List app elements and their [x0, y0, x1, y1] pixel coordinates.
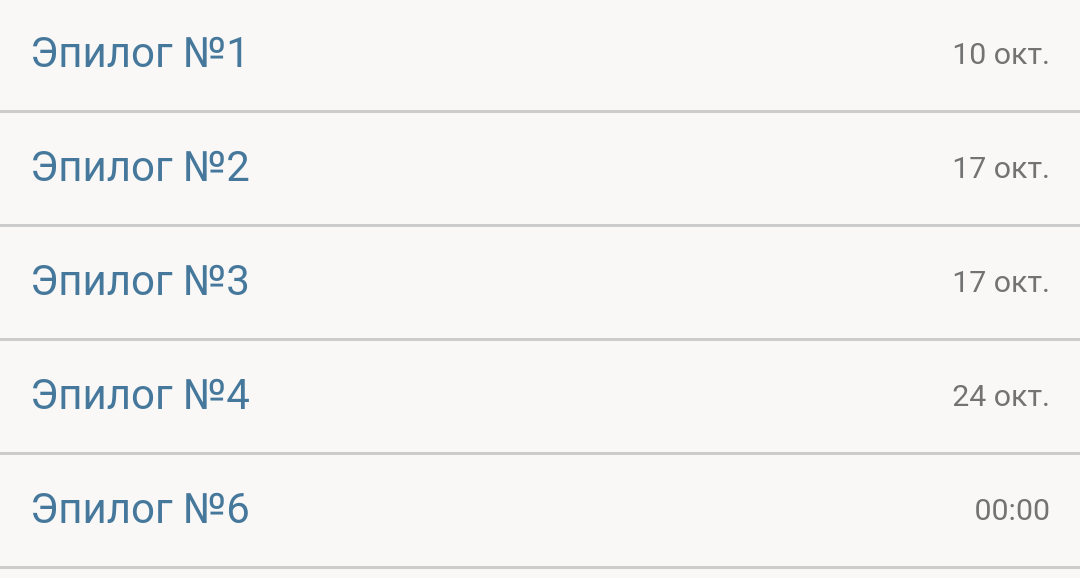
staticText: 00:00: [974, 492, 1050, 528]
staticText: Эпилог №3: [30, 256, 250, 305]
button[interactable]: Эпилог №2: [0, 114, 1080, 228]
button[interactable]: Эпилог №3: [0, 228, 1080, 342]
button[interactable]: Эпилог №1: [0, 0, 1080, 114]
staticText: Эпилог №6: [30, 484, 250, 533]
staticText: 17 окт.: [952, 264, 1050, 300]
button[interactable]: Эпилог №4: [0, 342, 1080, 456]
staticText: Эпилог №2: [30, 142, 250, 191]
staticText: 17 окт.: [952, 150, 1050, 186]
staticText: Эпилог №1: [30, 28, 250, 77]
button[interactable]: Эпилог №6: [0, 456, 1080, 570]
staticText: Эпилог №4: [30, 370, 250, 419]
staticText: 10 окт.: [952, 36, 1050, 72]
staticText: 24 окт.: [952, 378, 1050, 414]
